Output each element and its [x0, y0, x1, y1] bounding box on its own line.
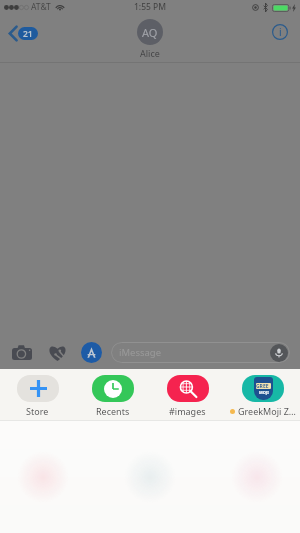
- button[interactable]: Details: [269, 21, 291, 43]
- staticText: MOJI: [259, 390, 269, 395]
- button[interactable]: Back: [0, 22, 44, 45]
- button[interactable]: Camera: [11, 342, 33, 362]
- button[interactable]: App Store: [81, 342, 102, 363]
- staticText: AQ: [142, 25, 158, 40]
- button[interactable]: Recents: [75, 369, 150, 420]
- button[interactable]: Store: [0, 369, 75, 420]
- staticText: 1:55 PM: [134, 1, 167, 13]
- staticText: GREEK: [256, 383, 271, 389]
- staticText: 21: [23, 28, 33, 40]
- button[interactable]: GREEK: [225, 369, 300, 420]
- staticText: GreekMoji Z…: [238, 405, 296, 417]
- button[interactable]: #images: [150, 369, 225, 420]
- other: Back: [9, 26, 17, 41]
- button[interactable]: iMessage: [111, 342, 290, 363]
- staticText: Store: [26, 405, 49, 417]
- button[interactable]: Dictate: [270, 344, 288, 362]
- staticText: Alice: [140, 47, 160, 59]
- staticText: iMessage: [119, 346, 162, 359]
- button[interactable]: Digital Touch: [47, 342, 68, 362]
- button[interactable]: AQ: [137, 19, 163, 59]
- staticText: i: [279, 25, 282, 39]
- staticText: AT&T: [31, 1, 51, 13]
- staticText: Recents: [96, 405, 130, 417]
- staticText: #images: [169, 405, 206, 417]
